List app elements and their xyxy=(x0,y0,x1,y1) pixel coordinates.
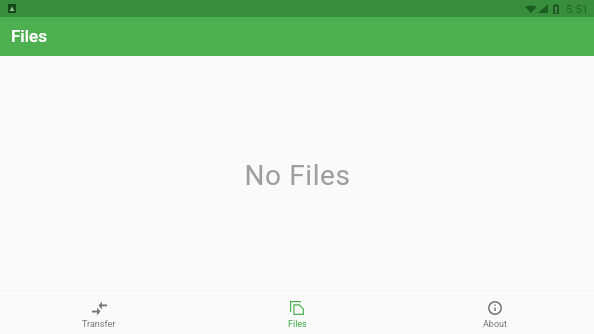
staticText: Transfer xyxy=(82,319,116,330)
staticText: No Files xyxy=(244,159,351,192)
other: Battery xyxy=(553,4,559,14)
staticText: Files xyxy=(288,319,307,330)
staticText: 5:51 xyxy=(566,2,589,15)
button[interactable]: Transfer xyxy=(0,291,198,334)
other: Wi-Fi xyxy=(525,5,537,13)
staticText: Files xyxy=(11,26,47,46)
button[interactable]: Files xyxy=(198,291,396,334)
staticText: About xyxy=(483,319,507,330)
other: Mobile signal xyxy=(538,4,548,13)
button[interactable]: About xyxy=(396,291,594,334)
other: Notification xyxy=(8,4,16,13)
